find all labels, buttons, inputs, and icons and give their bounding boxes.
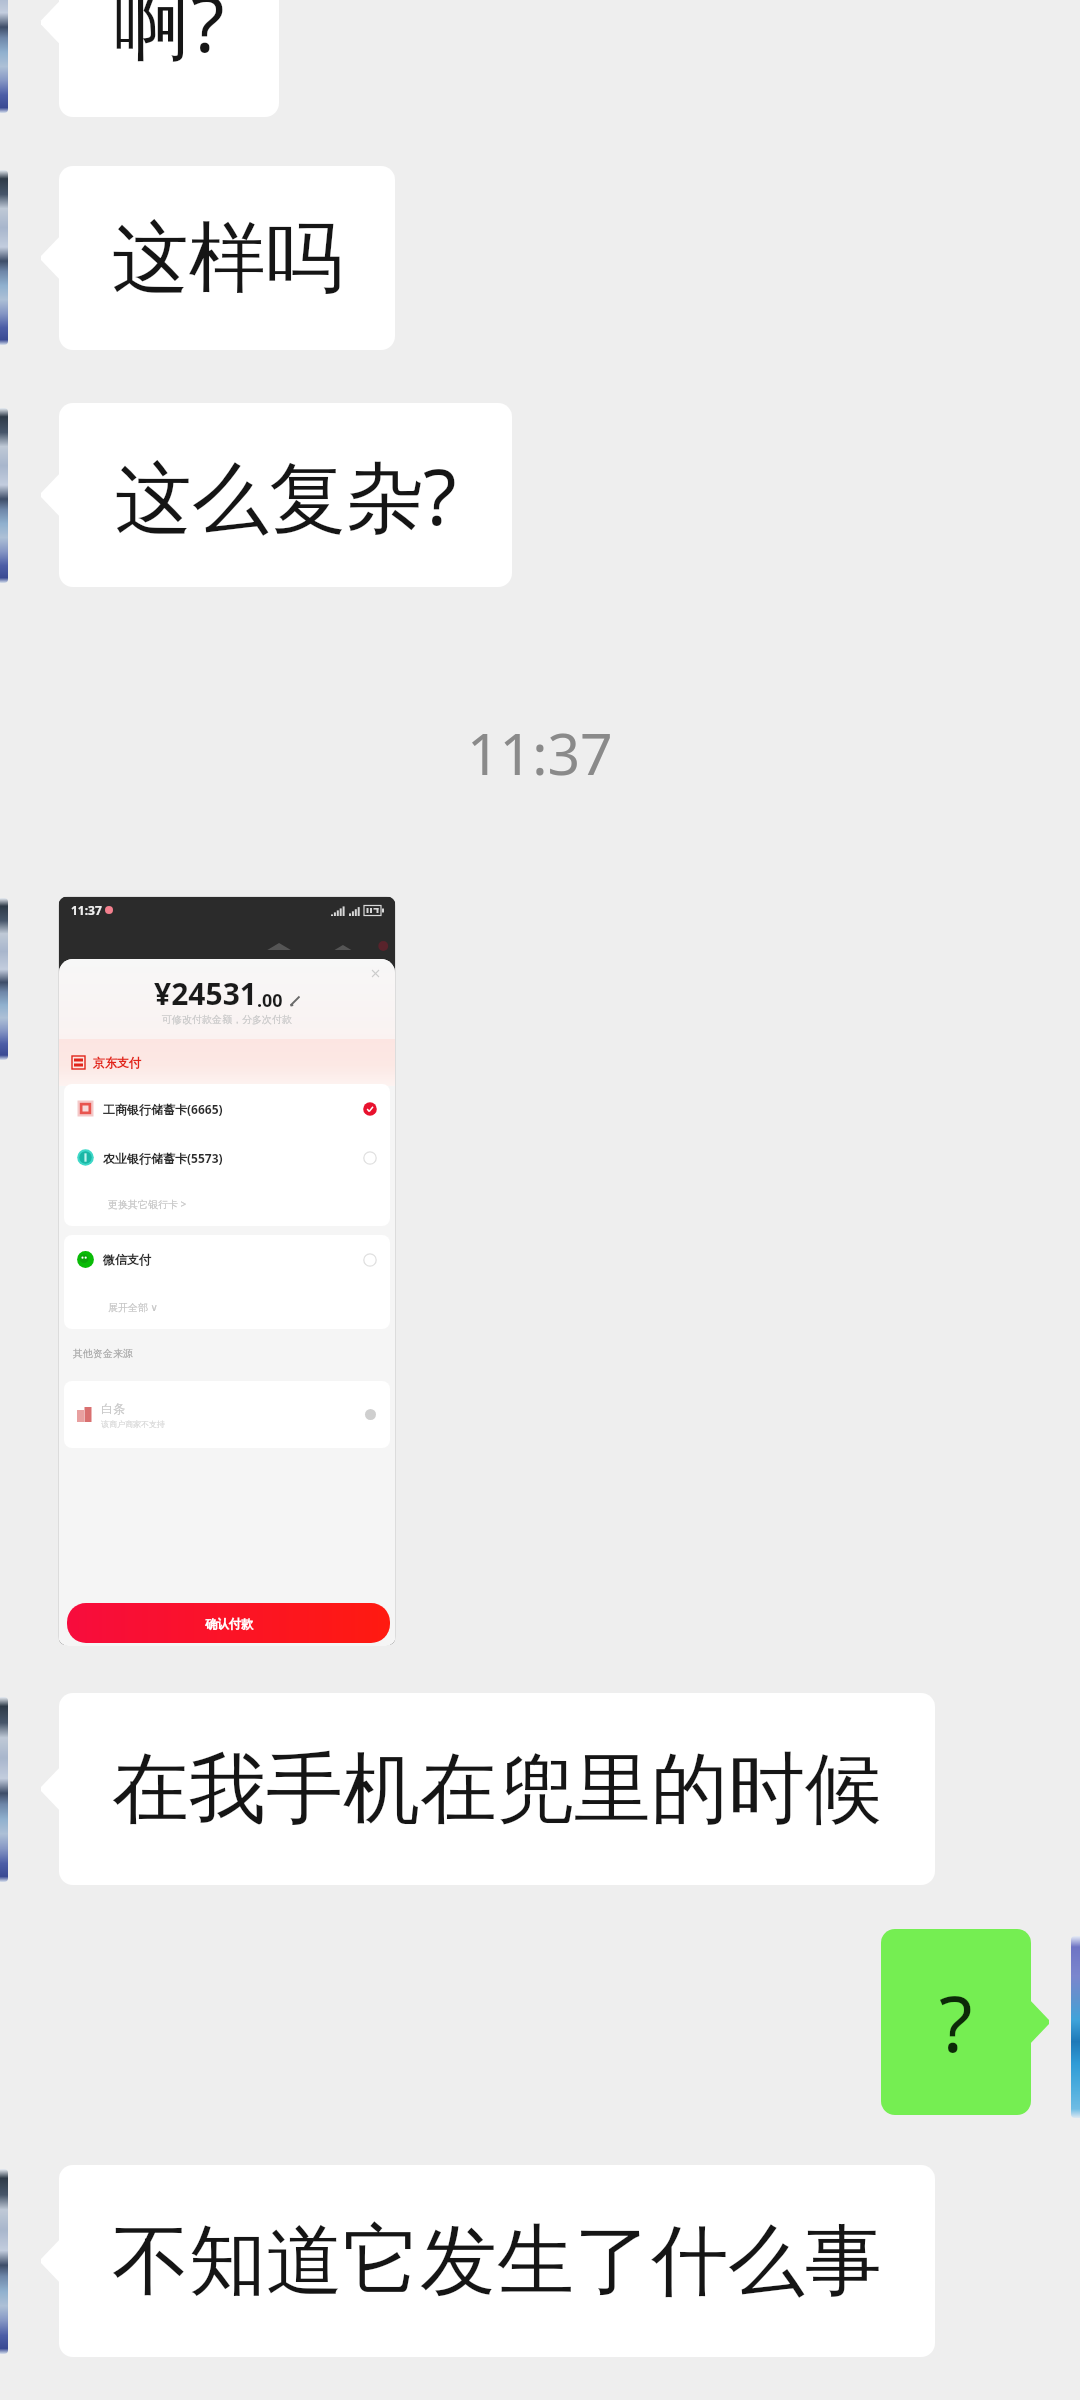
- staticText: 这么复杂?: [115, 443, 457, 548]
- staticText: 微信支付: [103, 1252, 151, 1267]
- button[interactable]: Avatar: [1071, 1936, 1080, 2118]
- button[interactable]: 确认付款: [67, 1603, 390, 1643]
- button[interactable]: 白条: [64, 1381, 390, 1448]
- staticText: 在我手机在兜里的时候: [112, 1741, 882, 1838]
- staticText: 啊?: [114, 0, 225, 75]
- button[interactable]: 更换其它银行卡 >: [64, 1182, 390, 1226]
- button[interactable]: 微信支付: [77, 1235, 377, 1284]
- staticText: 更换其它银行卡 >: [108, 1197, 187, 1211]
- staticText: 展开全部 ∨: [108, 1300, 158, 1314]
- staticText: ?: [939, 1970, 973, 2075]
- button[interactable]: ?: [881, 1929, 1050, 2115]
- staticText: 这样吗: [112, 210, 343, 307]
- button[interactable]: Edit amount: [289, 995, 301, 1007]
- button[interactable]: 工商银行储蓄卡(6665): [77, 1084, 377, 1133]
- button[interactable]: 展开全部 ∨: [64, 1284, 390, 1329]
- staticText: 11:37: [467, 714, 613, 792]
- button[interactable]: Avatar: [0, 170, 8, 345]
- button[interactable]: Avatar: [0, 1697, 8, 1882]
- button[interactable]: 在我手机在兜里的时候: [40, 1693, 935, 1885]
- staticText: 可修改付款金额，分多次付款: [59, 1013, 395, 1026]
- button[interactable]: 这样吗: [40, 166, 395, 350]
- staticText: 农业银行储蓄卡(5573): [103, 1150, 223, 1166]
- button[interactable]: Avatar: [0, 0, 8, 113]
- button[interactable]: Avatar: [0, 408, 8, 583]
- staticText: 该商户商家不支持: [101, 1419, 165, 1429]
- button[interactable]: 这么复杂?: [40, 403, 512, 587]
- button[interactable]: 啊?: [40, 0, 279, 117]
- staticText: 不知道它发生了什么事: [112, 2213, 882, 2310]
- button[interactable]: 11:37: [59, 897, 395, 1645]
- staticText: 确认付款: [205, 1616, 253, 1631]
- staticText: ¥24531: [154, 973, 257, 1014]
- staticText: 京东支付: [93, 1055, 141, 1070]
- button[interactable]: Avatar: [0, 898, 8, 1060]
- staticText: .00: [257, 988, 283, 1013]
- staticText: 其他资金来源: [73, 1347, 133, 1360]
- staticText: 工商银行储蓄卡(6665): [103, 1101, 223, 1117]
- staticText: 11:37: [71, 902, 102, 918]
- button[interactable]: 农业银行储蓄卡(5573): [77, 1133, 377, 1182]
- staticText: 白条: [101, 1401, 125, 1416]
- button[interactable]: 不知道它发生了什么事: [40, 2165, 935, 2357]
- button[interactable]: 京东支付: [72, 1055, 141, 1070]
- button[interactable]: Close: [371, 969, 380, 978]
- button[interactable]: Avatar: [0, 2169, 8, 2354]
